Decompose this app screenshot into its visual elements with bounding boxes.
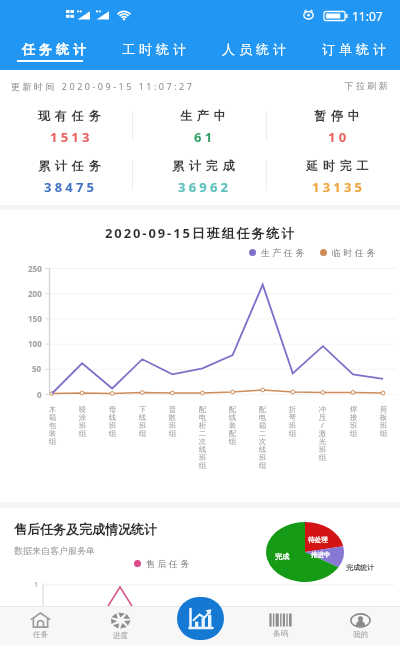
- staticText: 订单统计: [320, 41, 388, 57]
- staticText: 折弯班组: [288, 405, 297, 438]
- staticText: 临时任务: [332, 247, 378, 258]
- staticText: 61: [194, 128, 216, 146]
- staticText: 数据来自客户服务单: [14, 545, 95, 556]
- staticText: 13135: [312, 178, 366, 196]
- staticText: 售后任务及完成情况统计: [14, 521, 157, 537]
- staticText: 人员统计: [220, 41, 288, 57]
- staticText: 任务: [33, 630, 48, 639]
- staticText: 50: [32, 363, 42, 374]
- staticText: 喷涂班组: [78, 405, 87, 438]
- staticText: 木箱包装组: [48, 405, 57, 446]
- button[interactable]: 我的: [320, 606, 400, 645]
- staticText: 剪板班组: [379, 405, 388, 438]
- button[interactable]: 任务统计: [0, 33, 100, 70]
- button[interactable]: 生产中: [133, 101, 266, 150]
- staticText: 1513: [50, 128, 93, 146]
- staticText: 配电柜二次线班组: [198, 405, 207, 470]
- staticText: 生产中: [180, 108, 231, 123]
- staticText: 配电箱二次线班组: [258, 405, 267, 470]
- staticText: 冲压/激光班组: [318, 405, 327, 462]
- staticText: 累计完成: [172, 158, 240, 173]
- button[interactable]: 累计任务: [0, 150, 132, 200]
- staticText: 36962: [178, 178, 232, 196]
- button[interactable]: 暂停中: [267, 101, 400, 150]
- button[interactable]: 累计完成: [133, 150, 266, 200]
- button[interactable]: 进度: [80, 606, 160, 645]
- button[interactable]: 现有任务: [0, 101, 132, 150]
- staticText: 0: [37, 389, 42, 400]
- staticText: 200: [28, 288, 42, 299]
- staticText: 生产任务: [261, 247, 307, 258]
- staticText: 配线装配组: [228, 405, 237, 446]
- staticText: 累计任务: [38, 158, 106, 173]
- button[interactable]: 工时统计: [100, 33, 200, 70]
- staticText: 普散班组: [168, 405, 177, 438]
- staticText: 10: [328, 128, 350, 146]
- staticText: 推进中: [311, 551, 331, 559]
- staticText: 250: [28, 263, 42, 274]
- button[interactable]: 订单统计: [300, 33, 400, 70]
- staticText: 150: [28, 313, 42, 324]
- staticText: 100: [28, 338, 42, 349]
- staticText: 暂停中: [314, 108, 365, 123]
- button[interactable]: 人员统计: [200, 33, 300, 70]
- staticText: 1: [34, 580, 39, 590]
- button[interactable]: 统计: [177, 597, 224, 640]
- staticText: 售后任务: [146, 558, 192, 569]
- button[interactable]: 延时完工: [267, 150, 400, 200]
- staticText: 更新时间 2020-09-15 11:07:27: [11, 80, 195, 92]
- staticText: 焊接班组: [349, 405, 358, 438]
- staticText: 现有任务: [38, 108, 106, 123]
- staticText: 任务统计: [20, 41, 88, 57]
- staticText: 2020-09-15日班组任务统计: [105, 224, 297, 242]
- staticText: 待处理: [308, 536, 328, 544]
- staticText: 完成: [275, 552, 289, 561]
- button[interactable]: 条码: [240, 606, 320, 645]
- staticText: 延时完工: [306, 158, 374, 173]
- staticText: 我的: [353, 630, 368, 639]
- staticText: 11:07: [352, 8, 383, 24]
- staticText: 进度: [113, 631, 128, 640]
- staticText: 完成统计: [346, 563, 374, 572]
- button[interactable]: 下拉刷新: [343, 80, 389, 91]
- staticText: 工时统计: [120, 41, 188, 57]
- staticText: 条码: [273, 629, 288, 638]
- staticText: 下线班组: [138, 405, 147, 438]
- staticText: 母线班组: [108, 405, 117, 438]
- staticText: 38475: [44, 178, 98, 196]
- button[interactable]: 任务: [0, 606, 80, 645]
